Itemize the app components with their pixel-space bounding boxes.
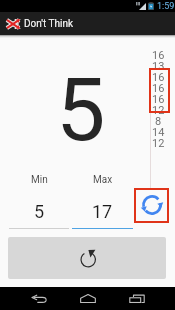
staticText: 5 [56, 58, 106, 161]
button[interactable]: Home [68, 287, 108, 310]
button[interactable]: Back [19, 287, 59, 310]
staticText: 8 [155, 115, 162, 126]
button[interactable]: Roll again [8, 237, 166, 279]
staticText: 1:59 [157, 1, 175, 12]
staticText: 5 [34, 201, 45, 222]
button[interactable]: Recent apps [117, 287, 157, 310]
staticText: Max [93, 174, 113, 186]
staticText: 16 [152, 82, 165, 93]
staticText: 16 [152, 71, 165, 82]
staticText: 16 [152, 49, 165, 60]
staticText: Don't Think [24, 18, 74, 30]
button[interactable]: Max [72, 174, 133, 229]
staticText: Min [31, 174, 48, 186]
button[interactable]: Min [9, 174, 69, 229]
staticText: 16 [152, 93, 165, 104]
staticText: 12 [152, 137, 165, 148]
staticText: 14 [152, 126, 165, 137]
staticText: 12 [152, 104, 165, 115]
staticText: 13 [152, 60, 165, 71]
staticText: 17 [92, 201, 113, 222]
